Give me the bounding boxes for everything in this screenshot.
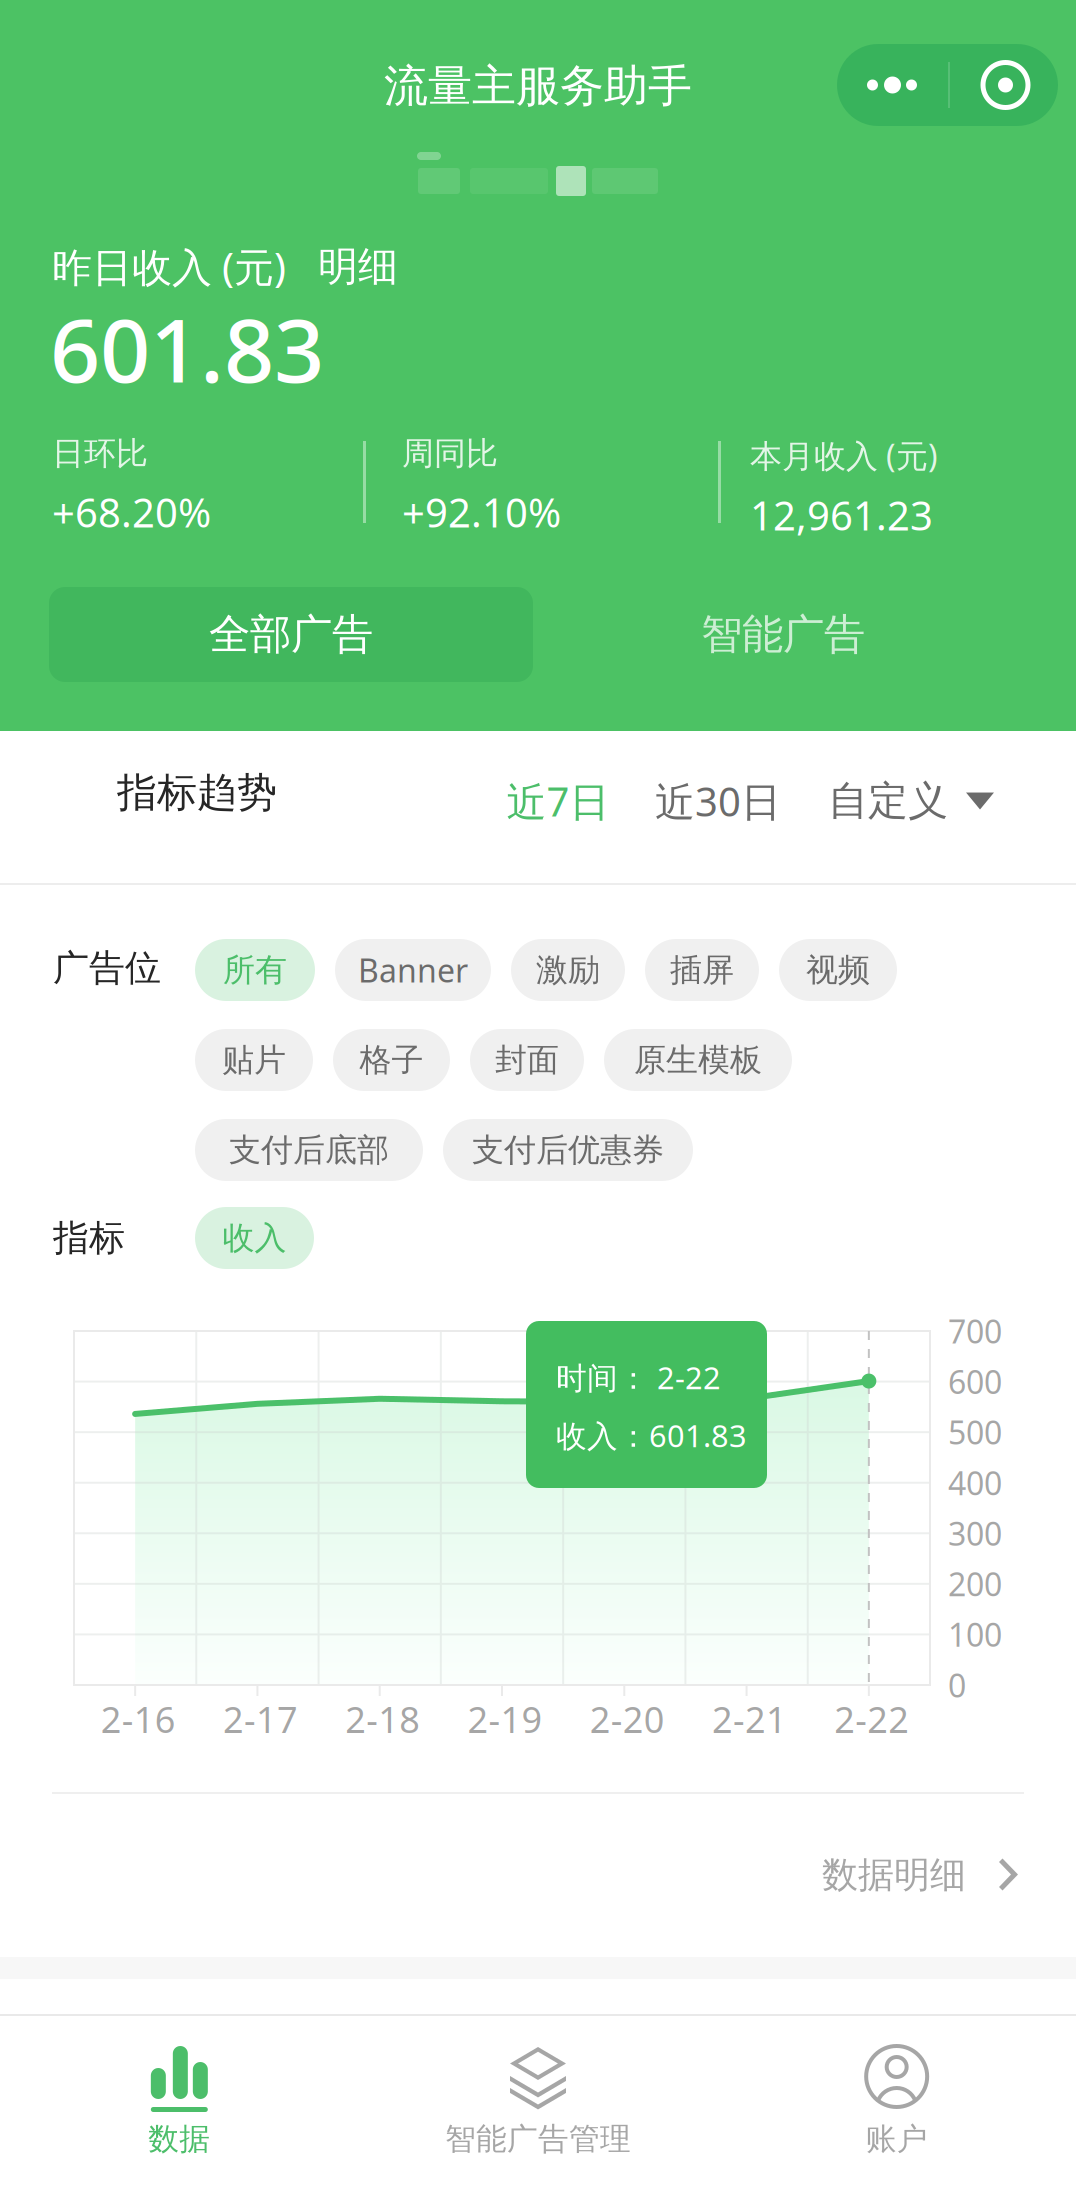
staticText: 100 (948, 1613, 1002, 1656)
staticText: 400 (948, 1461, 1002, 1504)
button[interactable]: 封面 (470, 1029, 584, 1091)
staticText: 指标趋势 (117, 768, 277, 817)
staticText: 智能广告 (701, 609, 865, 660)
staticText: 激励 (536, 950, 600, 990)
staticText: 收入：601.83 (556, 1415, 747, 1456)
staticText: 日环比 (52, 434, 148, 473)
staticText: +68.20% (52, 485, 211, 538)
staticText: 2-17 (223, 1695, 298, 1743)
staticText: 近7日 (506, 774, 609, 827)
staticText: 指标 (53, 1216, 125, 1260)
staticText: 收入 (222, 1218, 286, 1258)
staticText: 本月收入 (元) (750, 434, 938, 476)
staticText: 所有 (223, 950, 287, 990)
staticText: 流量主服务助手 (384, 59, 692, 113)
staticText: 2-20 (590, 1695, 665, 1743)
button[interactable]: More options and mini program menu (837, 44, 1058, 126)
staticText: 支付后底部 (229, 1130, 389, 1170)
staticText: 支付后优惠券 (472, 1130, 664, 1170)
button[interactable]: 原生模板 (604, 1029, 792, 1091)
staticText: 0 (948, 1664, 966, 1706)
staticText: 封面 (495, 1040, 559, 1080)
button[interactable]: 全部广告 (49, 587, 533, 682)
staticText: 原生模板 (634, 1040, 762, 1080)
button[interactable]: 支付后底部 (195, 1119, 423, 1181)
staticText: 插屏 (670, 950, 734, 990)
button[interactable]: 所有 (195, 939, 315, 1001)
button[interactable]: Banner (335, 939, 491, 1001)
staticText: 500 (948, 1411, 1002, 1453)
staticText: 时间： 2-22 (556, 1357, 721, 1398)
staticText: 账户 (866, 2120, 928, 2158)
button[interactable]: 视频 (779, 939, 897, 1001)
button[interactable]: 数据 (0, 2016, 359, 2185)
staticText: 12,961.23 (750, 488, 933, 542)
staticText: 2-18 (345, 1695, 420, 1743)
staticText: 数据 (148, 2120, 210, 2158)
staticText: 600 (948, 1360, 1002, 1403)
button[interactable]: 账户 (717, 2016, 1076, 2185)
button[interactable]: 近30日 (643, 773, 793, 829)
button[interactable]: 插屏 (645, 939, 759, 1001)
staticText: 明细 (318, 242, 398, 291)
button[interactable]: 数据明细 (822, 1848, 1019, 1902)
button[interactable]: 贴片 (195, 1029, 313, 1091)
button[interactable]: 智能广告 (541, 587, 1025, 682)
button[interactable]: 近7日 (493, 773, 623, 829)
staticText: 昨日收入 (元) (52, 240, 286, 293)
button[interactable]: 明细 (318, 242, 398, 291)
button[interactable]: 支付后优惠券 (443, 1119, 693, 1181)
button[interactable]: 激励 (511, 939, 625, 1001)
button[interactable]: 格子 (333, 1029, 450, 1091)
staticText: 智能广告管理 (445, 2120, 631, 2158)
staticText: 601.83 (50, 290, 324, 407)
staticText: Banner (358, 949, 468, 991)
staticText: 周同比 (402, 434, 498, 473)
staticText: 视频 (806, 950, 870, 990)
staticText: 2-22 (834, 1695, 909, 1743)
staticText: 全部广告 (209, 609, 373, 660)
staticText: 贴片 (222, 1040, 286, 1080)
button[interactable]: 智能广告管理 (359, 2016, 717, 2185)
staticText: 300 (948, 1512, 1002, 1554)
staticText: 广告位 (53, 946, 161, 990)
staticText: 数据明细 (822, 1853, 966, 1897)
staticText: 2-21 (712, 1695, 787, 1743)
staticText: +92.10% (402, 485, 561, 538)
staticText: 2-16 (101, 1695, 176, 1743)
button[interactable]: 自定义 (828, 773, 1028, 829)
staticText: 700 (948, 1310, 1002, 1352)
staticText: 2-19 (467, 1695, 542, 1743)
staticText: 格子 (359, 1040, 423, 1080)
staticText: 200 (948, 1563, 1002, 1605)
button[interactable]: 收入 (195, 1207, 314, 1269)
staticText: 近30日 (655, 774, 781, 827)
staticText: 自定义 (828, 776, 948, 825)
